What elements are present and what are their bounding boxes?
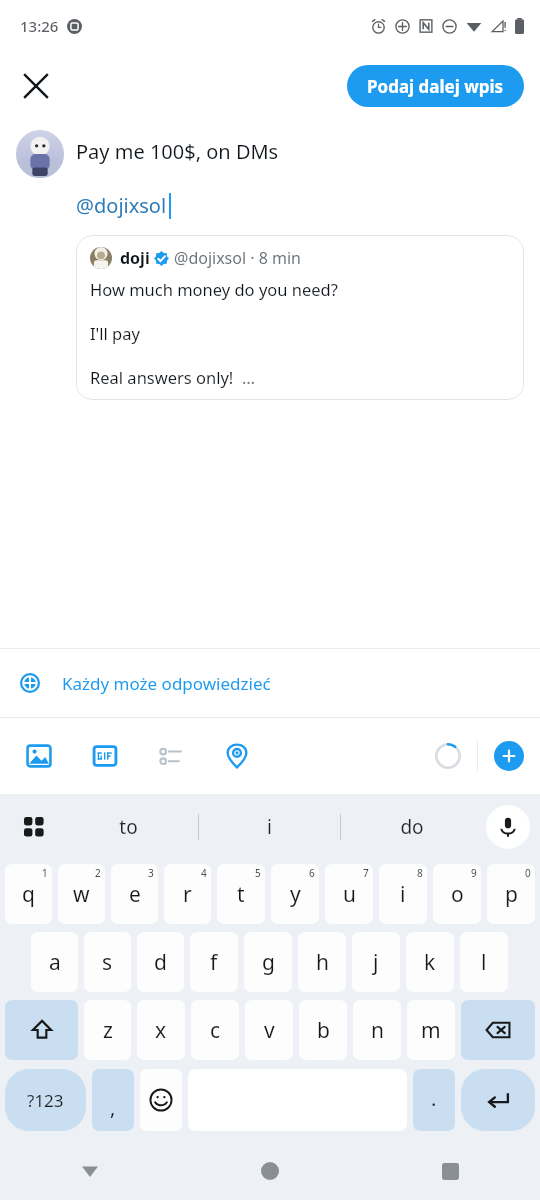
- button[interactable]: n: [353, 1000, 401, 1060]
- button[interactable]: Każdy może odpowiedzieć: [0, 649, 540, 717]
- staticText: ?123: [27, 1089, 64, 1112]
- staticText: v: [264, 1016, 275, 1045]
- button[interactable]: q: [5, 864, 52, 924]
- button[interactable]: ?123: [5, 1069, 86, 1131]
- button[interactable]: b: [299, 1000, 347, 1060]
- staticText: do: [400, 814, 424, 840]
- staticText: e: [129, 880, 141, 909]
- staticText: l: [481, 948, 487, 977]
- button[interactable]: m: [407, 1000, 455, 1060]
- staticText: r: [183, 880, 192, 909]
- staticText: Pay me 100$, on DMs: [76, 138, 279, 165]
- staticText: 6: [309, 866, 315, 880]
- staticText: w: [73, 880, 90, 909]
- button[interactable]: Comma: [92, 1069, 134, 1131]
- button[interactable]: Recents: [360, 1142, 540, 1200]
- staticText: 3: [148, 866, 154, 880]
- button[interactable]: Close: [10, 60, 62, 112]
- button[interactable]: Add GIF: [84, 735, 126, 777]
- button[interactable]: e: [111, 864, 158, 924]
- staticText: 4: [201, 866, 207, 880]
- button[interactable]: Voice input: [486, 805, 530, 849]
- staticText: z: [103, 1016, 113, 1045]
- staticText: u: [343, 880, 356, 909]
- staticText: c: [210, 1016, 221, 1045]
- staticText: 2: [95, 866, 101, 880]
- button[interactable]: x: [137, 1000, 185, 1060]
- button[interactable]: Back: [0, 1142, 180, 1200]
- staticText: 7: [363, 866, 369, 880]
- button[interactable]: Home: [180, 1142, 360, 1200]
- button[interactable]: Shift: [5, 1000, 78, 1060]
- staticText: m: [421, 1016, 441, 1045]
- staticText: h: [316, 948, 329, 977]
- staticText: j: [373, 948, 379, 977]
- button[interactable]: l: [460, 932, 508, 992]
- button[interactable]: k: [406, 932, 454, 992]
- button[interactable]: Podaj dalej wpis: [347, 65, 524, 107]
- staticText: to: [119, 814, 138, 840]
- button[interactable]: i: [199, 794, 340, 860]
- button[interactable]: Add poll: [150, 735, 192, 777]
- staticText: Każdy może odpowiedzieć: [62, 672, 271, 695]
- staticText: p: [505, 880, 518, 909]
- staticText: o: [451, 880, 464, 909]
- staticText: i: [400, 880, 406, 909]
- staticText: 13:26: [20, 16, 59, 36]
- button[interactable]: Period: [413, 1069, 455, 1131]
- staticText: I'll pay: [90, 322, 140, 344]
- button[interactable]: o: [433, 864, 481, 924]
- staticText: b: [317, 1016, 330, 1045]
- staticText: 5: [255, 866, 261, 880]
- staticText: doji: [120, 247, 150, 269]
- staticText: x: [155, 1016, 167, 1045]
- button[interactable]: h: [298, 932, 346, 992]
- button[interactable]: doji: [76, 235, 524, 400]
- staticText: ,: [110, 1094, 116, 1121]
- button[interactable]: f: [190, 932, 238, 992]
- staticText: @dojixsol · 8 min: [174, 247, 301, 269]
- button[interactable]: s: [84, 932, 131, 992]
- button[interactable]: to: [58, 794, 198, 860]
- button[interactable]: y: [271, 864, 319, 924]
- staticText: f: [210, 948, 218, 977]
- button[interactable]: j: [352, 932, 400, 992]
- staticText: 9: [471, 866, 477, 880]
- staticText: 1: [42, 866, 48, 880]
- button[interactable]: u: [325, 864, 373, 924]
- staticText: Real answers only!: [90, 366, 234, 388]
- button[interactable]: Enter: [461, 1069, 535, 1131]
- button[interactable]: g: [244, 932, 292, 992]
- button[interactable]: r: [164, 864, 211, 924]
- button[interactable]: p: [487, 864, 535, 924]
- button[interactable]: Emoji: [140, 1069, 182, 1131]
- staticText: 0: [525, 866, 531, 880]
- staticText: k: [424, 948, 436, 977]
- button[interactable]: Toolbar: [12, 805, 56, 849]
- staticText: a: [49, 948, 61, 977]
- button[interactable]: z: [84, 1000, 131, 1060]
- staticText: d: [154, 948, 167, 977]
- button[interactable]: do: [341, 794, 482, 860]
- button[interactable]: w: [58, 864, 105, 924]
- button[interactable]: Add location: [216, 735, 258, 777]
- button[interactable]: Add photo: [18, 735, 60, 777]
- button[interactable]: a: [31, 932, 78, 992]
- button[interactable]: t: [217, 864, 265, 924]
- button[interactable]: v: [245, 1000, 293, 1060]
- button[interactable]: Add post: [494, 741, 524, 771]
- staticText: t: [237, 880, 245, 909]
- staticText: s: [102, 948, 113, 977]
- button[interactable]: Backspace: [461, 1000, 535, 1060]
- button[interactable]: c: [191, 1000, 239, 1060]
- staticText: g: [262, 948, 275, 977]
- staticText: i: [267, 814, 272, 840]
- staticText: …: [242, 366, 256, 388]
- staticText: 8: [417, 866, 423, 880]
- staticText: .: [431, 1085, 437, 1112]
- staticText: q: [22, 880, 35, 909]
- button[interactable]: i: [379, 864, 427, 924]
- staticText: Podaj dalej wpis: [367, 75, 504, 98]
- button[interactable]: d: [137, 932, 184, 992]
